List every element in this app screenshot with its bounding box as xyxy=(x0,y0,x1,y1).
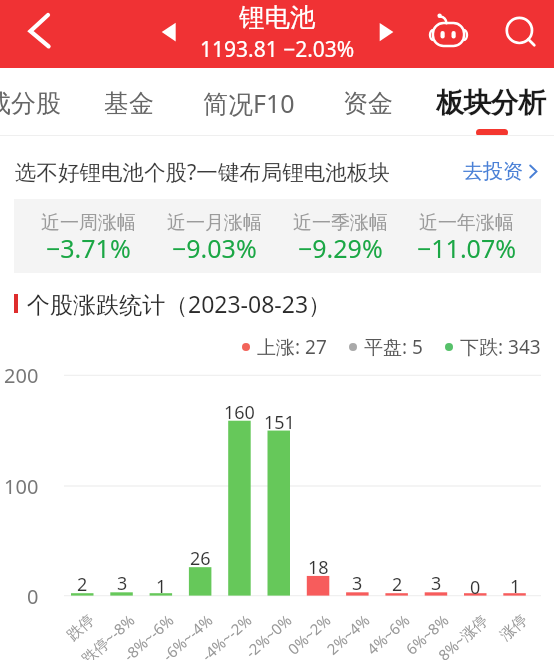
staticText: 下跌: 343 xyxy=(460,334,541,360)
staticText: 2%~4% xyxy=(322,610,373,659)
staticText: 3 xyxy=(117,571,128,596)
staticText: 8%~涨停 xyxy=(433,610,491,660)
staticText: −9.29% xyxy=(298,231,383,265)
staticText: -4%~-2% xyxy=(197,610,255,660)
staticText: −3.71% xyxy=(46,231,131,265)
button[interactable]: Search xyxy=(494,0,546,68)
staticText: 200 xyxy=(4,362,39,388)
staticText: 个股涨跌统计（2023-08-23） xyxy=(27,288,332,319)
staticText: 18 xyxy=(308,555,329,580)
button[interactable]: 资金 xyxy=(308,68,428,136)
staticText: 简况F10 xyxy=(203,86,295,120)
button[interactable]: 板块分析 xyxy=(431,68,551,136)
staticText: 1193.81 −2.03% xyxy=(200,35,355,64)
staticText: -8%~-6% xyxy=(119,610,177,660)
button[interactable]: Back xyxy=(5,0,73,68)
staticText: 去投资 xyxy=(463,159,523,184)
staticText: 100 xyxy=(4,473,39,499)
staticText: 板块分析 xyxy=(436,86,546,121)
button[interactable]: 基金 xyxy=(69,68,189,136)
staticText: 3 xyxy=(352,571,363,596)
staticText: 6%~8% xyxy=(401,610,452,659)
staticText: 上涨: 27 xyxy=(257,334,327,360)
button[interactable]: 简况F10 xyxy=(189,68,309,136)
staticText: 1 xyxy=(510,574,521,599)
staticText: 跌停 xyxy=(63,611,98,645)
button[interactable]: 成分股 xyxy=(0,68,83,136)
button[interactable]: AI assistant xyxy=(424,0,472,68)
staticText: 跌停~-8% xyxy=(77,610,138,660)
staticText: 2 xyxy=(77,572,88,597)
staticText: −9.03% xyxy=(172,231,257,265)
staticText: 1 xyxy=(156,574,167,599)
staticText: 涨停 xyxy=(496,611,531,645)
staticText: 近一年涨幅 xyxy=(419,211,514,235)
staticText: 近一月涨幅 xyxy=(167,211,262,235)
staticText: −11.07% xyxy=(417,231,516,265)
staticText: 锂电池 xyxy=(239,1,316,33)
staticText: 近一周涨幅 xyxy=(41,211,136,235)
staticText: 近一季涨幅 xyxy=(293,211,388,235)
staticText: 0 xyxy=(470,575,481,600)
staticText: 平盘: 5 xyxy=(364,334,423,360)
staticText: 4%~6% xyxy=(362,610,413,659)
staticText: 3 xyxy=(431,571,442,596)
button[interactable]: Previous stock xyxy=(147,0,189,68)
staticText: 151 xyxy=(264,410,295,435)
button[interactable]: Next stock xyxy=(366,0,408,68)
staticText: 0 xyxy=(27,583,39,609)
staticText: 160 xyxy=(224,400,255,425)
staticText: 基金 xyxy=(104,88,154,119)
staticText: 资金 xyxy=(343,88,393,119)
staticText: -6%~-4% xyxy=(158,610,216,660)
staticText: 2 xyxy=(392,572,403,597)
staticText: 选不好锂电池个股?一键布局锂电池板块 xyxy=(15,157,390,186)
staticText: -2%~0% xyxy=(240,610,295,660)
button[interactable]: 选不好锂电池个股?一键布局锂电池板块 xyxy=(15,136,538,199)
staticText: 0%~2% xyxy=(283,610,334,659)
staticText: 26 xyxy=(190,546,211,571)
staticText: 成分股 xyxy=(0,88,61,119)
